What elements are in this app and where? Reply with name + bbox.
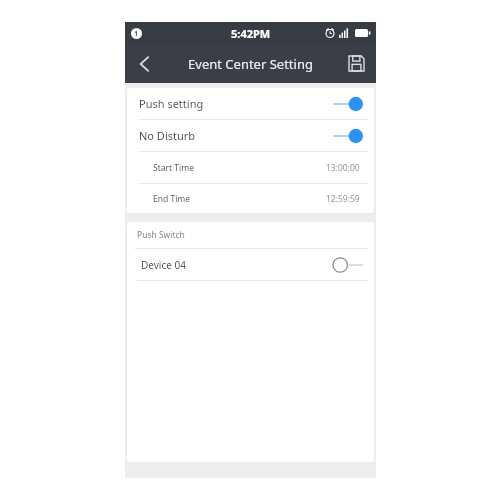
button[interactable]: Device 04 [127,249,374,280]
staticText: End Time [153,193,191,205]
button[interactable]: Push setting [127,88,374,119]
staticText: 12:59:59 [326,193,360,205]
button[interactable]: Toggle off [332,257,364,273]
button[interactable]: Start Time [127,152,374,183]
staticText: Event Center Setting [188,55,313,73]
button[interactable]: Toggle on [332,128,364,144]
staticText: No Disturb [139,128,196,143]
button[interactable]: Toggle on [332,96,364,112]
button[interactable]: Back [125,44,165,83]
staticText: 13:00:00 [326,162,360,174]
staticText: 1 [134,29,139,39]
staticText: Device 04 [141,258,186,272]
button[interactable]: Save [336,44,376,83]
staticText: 5:42PM [231,26,271,41]
button[interactable]: No Disturb [127,120,374,151]
staticText: Push setting [139,96,204,111]
staticText: Push Switch [137,229,185,241]
staticText: Start Time [153,162,194,174]
button[interactable]: End Time [127,184,374,213]
